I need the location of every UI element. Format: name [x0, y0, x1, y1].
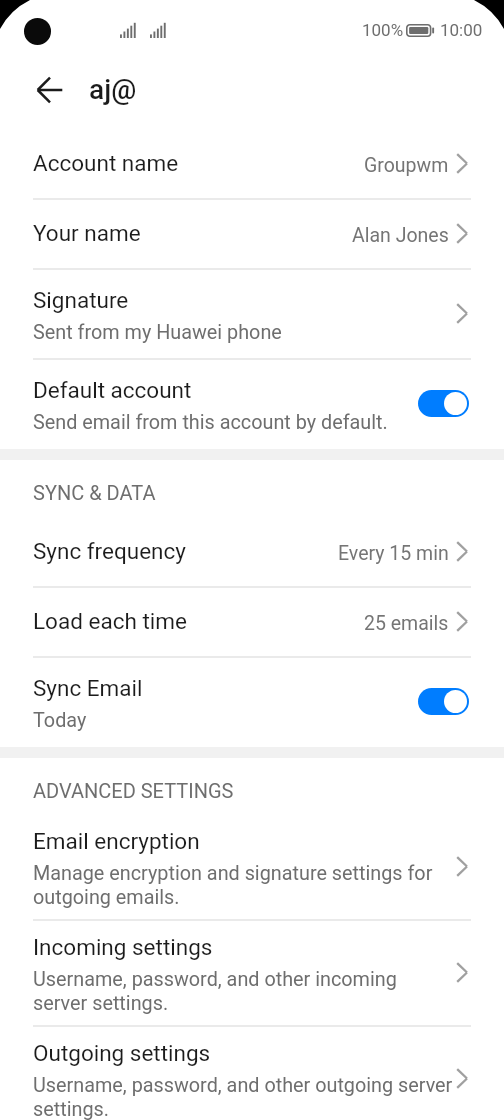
staticText: Signature — [33, 287, 129, 313]
staticText: Load each time — [33, 608, 187, 634]
staticText: Groupwm — [364, 154, 449, 177]
staticText: Sent from my Huawei phone — [33, 321, 282, 344]
staticText: ADVANCED SETTINGS — [33, 779, 234, 802]
button[interactable]: Account name — [0, 128, 504, 198]
button[interactable]: Toggle — [418, 688, 469, 715]
button[interactable]: Outgoing settings — [0, 1025, 504, 1120]
button[interactable]: Default account — [0, 358, 504, 449]
staticText: Username, password, and other outgoing s… — [33, 1074, 453, 1120]
staticText: Incoming settings — [33, 934, 213, 960]
button[interactable]: Sync Email — [0, 656, 504, 747]
staticText: 25 emails — [364, 612, 449, 635]
button[interactable]: Toggle — [418, 390, 469, 417]
button[interactable]: Signature — [0, 268, 504, 358]
staticText: Manage encryption and signature settings… — [33, 862, 433, 908]
staticText: Outgoing settings — [33, 1040, 211, 1066]
button[interactable]: Back — [25, 65, 74, 114]
button[interactable]: Load each time — [0, 586, 504, 656]
button[interactable]: Your name — [0, 198, 504, 268]
staticText: aj@ — [89, 73, 137, 106]
staticText: Your name — [33, 220, 141, 246]
button[interactable]: Sync frequency — [0, 516, 504, 586]
staticText: 100% — [362, 20, 404, 40]
staticText: Sync Email — [33, 675, 143, 701]
staticText: Today — [33, 709, 87, 732]
staticText: Email encryption — [33, 828, 200, 854]
staticText: 10:00 — [440, 20, 483, 40]
staticText: SYNC & DATA — [33, 481, 156, 504]
staticText: Account name — [33, 150, 179, 176]
staticText: Send email from this account by default. — [33, 411, 388, 434]
staticText: Username, password, and other incoming s… — [33, 968, 433, 1014]
button[interactable]: Email encryption — [0, 813, 504, 919]
staticText: Every 15 min — [338, 542, 449, 565]
staticText: Alan Jones — [352, 224, 449, 247]
staticText: Sync frequency — [33, 538, 186, 564]
button[interactable]: Incoming settings — [0, 919, 504, 1025]
staticText: Default account — [33, 377, 192, 403]
